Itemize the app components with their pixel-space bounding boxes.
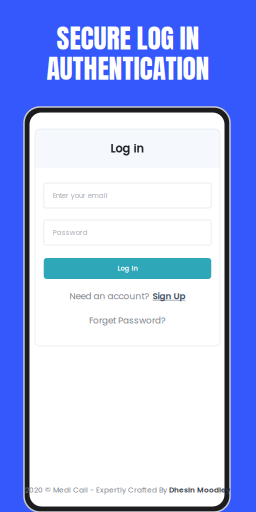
button[interactable]: Sign Up [152,290,185,302]
staticText: AUTHENTICATION [46,47,209,89]
button[interactable]: Enter your email [44,183,211,208]
staticText: Log in [110,140,144,157]
button[interactable]: Forget Password? [89,314,166,327]
staticText: Dhesin Moodley [169,485,230,495]
staticText: Log In [117,264,137,273]
staticText: Enter your email [53,191,108,200]
staticText: Forget Password? [89,314,166,327]
staticText: SECURE LOG IN [56,17,199,58]
button[interactable]: Password [44,220,211,245]
staticText: 2020 © Medi Call - Expertly Crafted By [25,485,167,495]
staticText: Need an account? [69,290,149,302]
staticText: Sign Up [152,290,185,302]
button[interactable]: Log In [44,258,211,279]
staticText: Password [53,228,88,237]
